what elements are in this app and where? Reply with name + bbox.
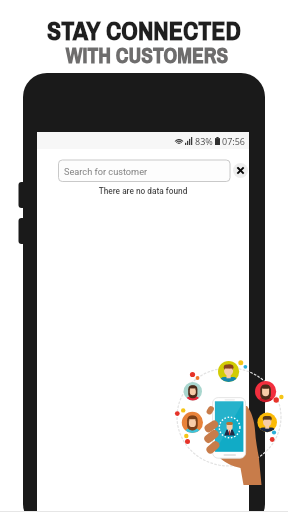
staticText: STAY CONNECTED xyxy=(0,13,288,48)
staticText: There are no data found xyxy=(37,186,249,196)
staticText: WITH CUSTOMERS xyxy=(3,41,288,70)
staticText: 83% xyxy=(195,135,213,147)
staticText: 07:56 xyxy=(222,135,246,147)
staticText: Search for customer xyxy=(64,166,148,177)
button[interactable]: Clear search xyxy=(233,163,248,178)
button[interactable]: Search for customer xyxy=(59,160,231,182)
